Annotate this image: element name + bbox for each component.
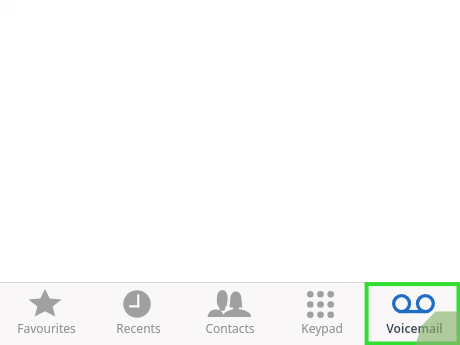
button[interactable]: Contacts	[184, 283, 276, 345]
staticText: Contacts	[205, 320, 255, 336]
staticText: Recents	[116, 320, 161, 336]
staticText: Voicemail	[386, 320, 443, 336]
button[interactable]: Recents	[92, 283, 184, 345]
staticText: Keypad	[301, 320, 343, 336]
staticText: Favourites	[17, 320, 76, 336]
button[interactable]: Keypad	[276, 283, 368, 345]
button[interactable]: Voicemail	[368, 283, 460, 345]
button[interactable]: Favourites	[0, 283, 92, 345]
